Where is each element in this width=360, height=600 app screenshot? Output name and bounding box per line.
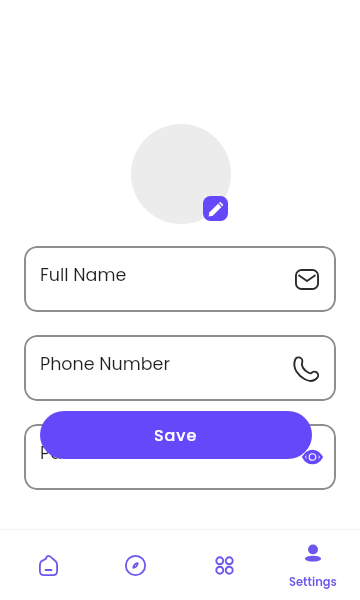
button[interactable]: Edit photo bbox=[203, 196, 228, 221]
button[interactable]: Apps bbox=[200, 541, 248, 589]
staticText: Save bbox=[154, 424, 198, 446]
button[interactable]: Settings bbox=[282, 533, 343, 589]
button[interactable]: Explore bbox=[111, 541, 159, 589]
button[interactable]: Save bbox=[40, 411, 312, 459]
button[interactable]: Password bbox=[24, 424, 336, 490]
staticText: Settings bbox=[289, 574, 337, 589]
staticText: Phone Number bbox=[40, 352, 170, 377]
button[interactable]: Home bbox=[24, 541, 72, 589]
button[interactable]: Profile photo bbox=[131, 124, 231, 224]
button[interactable]: Full Name bbox=[24, 246, 336, 312]
button[interactable]: Phone Number bbox=[24, 335, 336, 401]
staticText: Password bbox=[40, 441, 125, 466]
staticText: Full Name bbox=[40, 263, 127, 288]
